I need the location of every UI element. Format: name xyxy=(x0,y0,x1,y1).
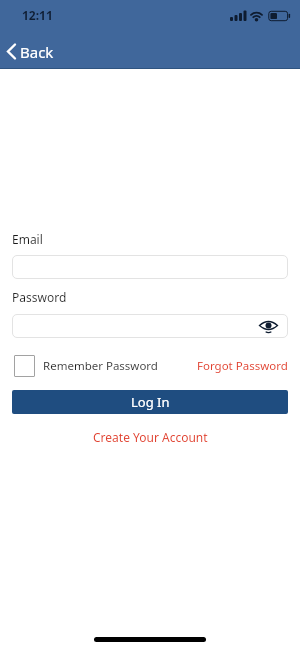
staticText: Password xyxy=(12,289,67,305)
button[interactable]: Forgot Password xyxy=(197,358,288,374)
staticText: Remember Password xyxy=(43,358,158,374)
button[interactable] xyxy=(14,355,35,377)
button[interactable]: Log In xyxy=(12,390,288,414)
button[interactable] xyxy=(12,255,288,279)
staticText: Back xyxy=(20,42,54,62)
button[interactable] xyxy=(12,314,288,338)
staticText: Log In xyxy=(131,393,170,411)
button[interactable]: Create Your Account xyxy=(93,429,208,445)
staticText: Email xyxy=(12,231,43,247)
staticText: 12:11 xyxy=(22,7,53,23)
button[interactable]: Back xyxy=(0,35,300,68)
